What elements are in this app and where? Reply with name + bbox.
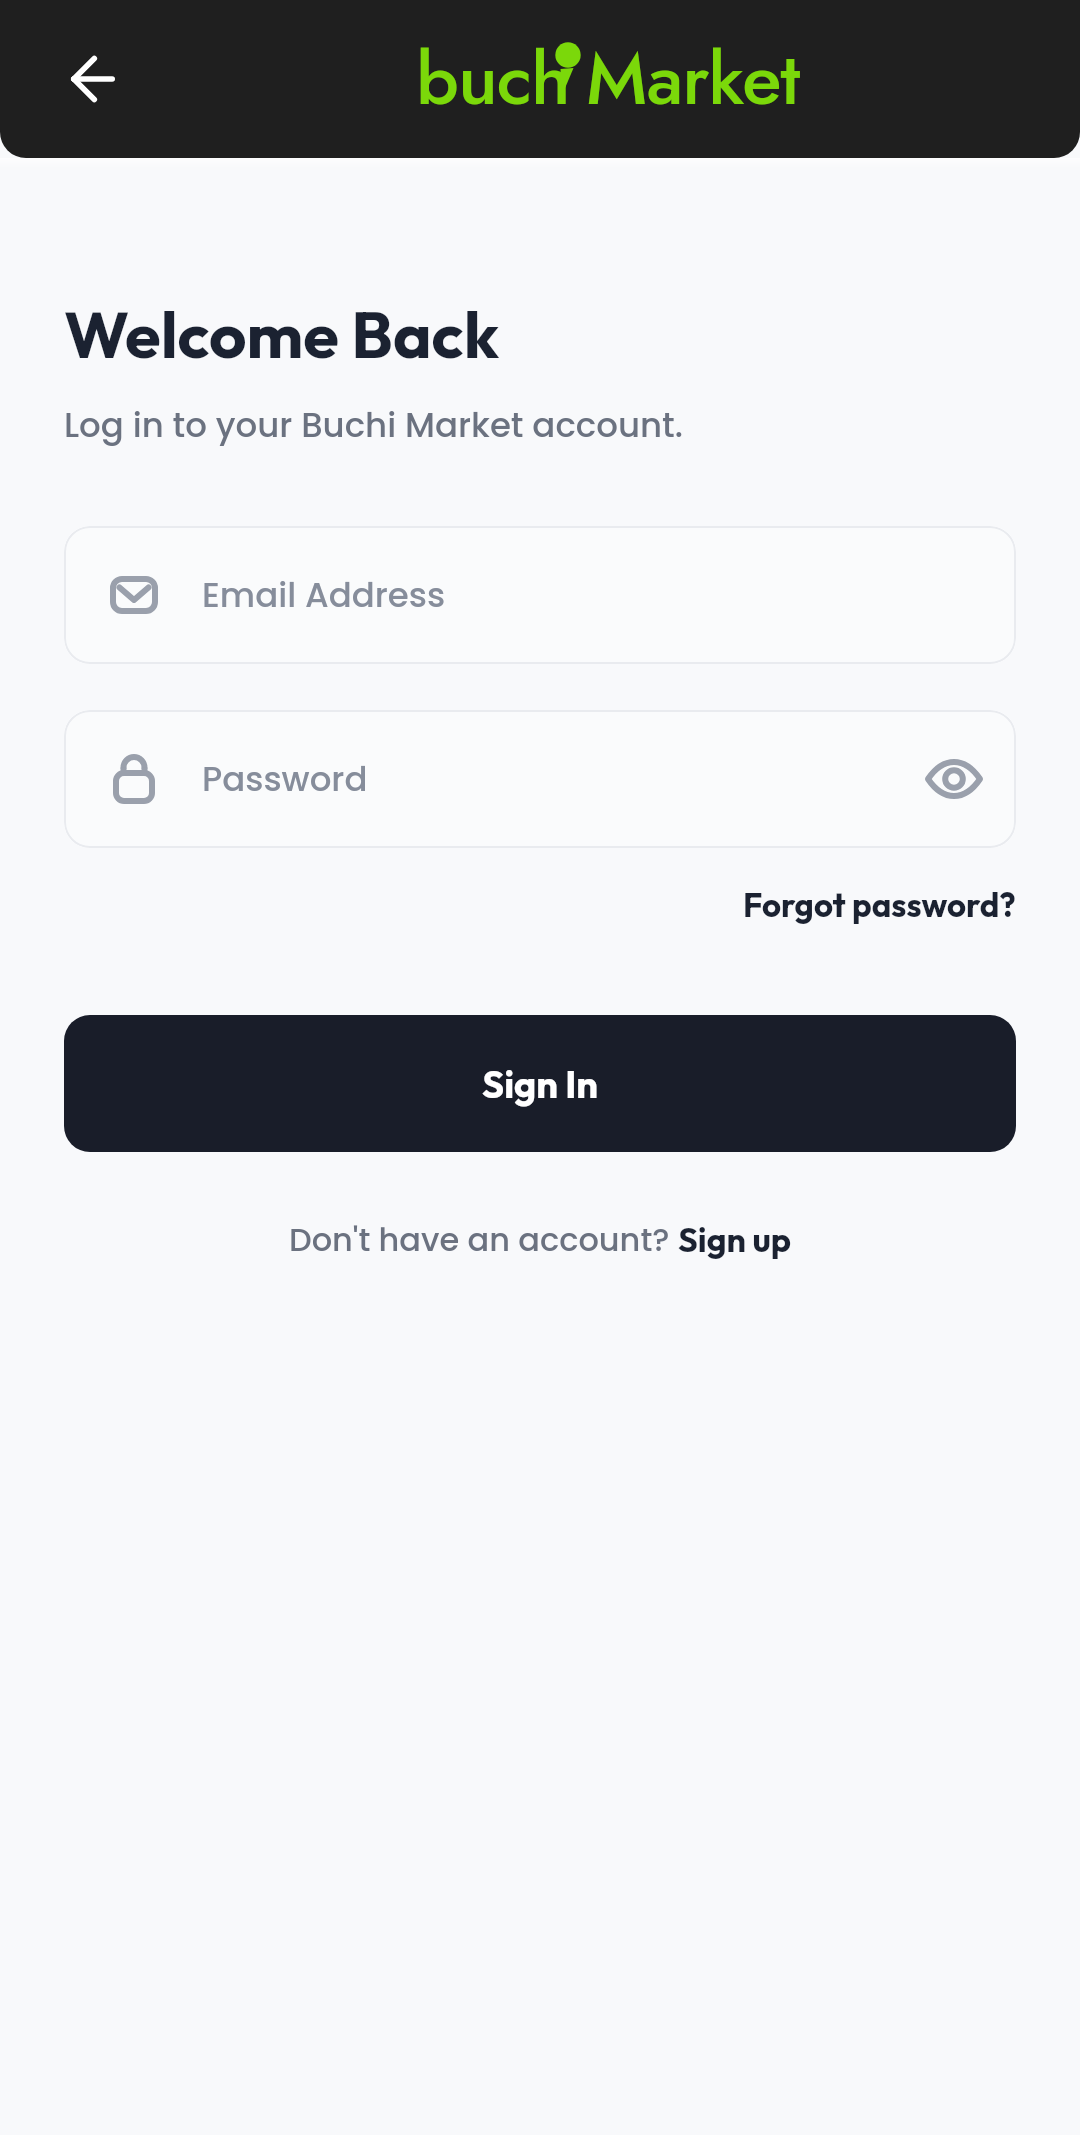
button[interactable]: Show password bbox=[912, 737, 996, 821]
button[interactable]: Don't have an account? bbox=[289, 1217, 792, 1262]
staticText: buch bbox=[416, 26, 570, 131]
button[interactable]: Email Address bbox=[64, 526, 1016, 664]
staticText: Forgot password? bbox=[743, 884, 1016, 926]
button[interactable]: Sign In bbox=[64, 1015, 1016, 1152]
staticText: Sign In bbox=[482, 1060, 599, 1108]
button[interactable]: Back bbox=[48, 34, 138, 124]
staticText: Sign up bbox=[678, 1218, 792, 1261]
staticText: Log in to your Buchi Market account. bbox=[64, 401, 683, 449]
staticText: Don't have an account? bbox=[289, 1217, 678, 1262]
staticText: Welcome Back bbox=[64, 293, 500, 375]
staticText: Password bbox=[202, 755, 368, 803]
button[interactable]: Password bbox=[64, 710, 1016, 848]
button[interactable]: Forgot password? bbox=[743, 884, 1016, 926]
staticText: Market bbox=[586, 26, 800, 131]
staticText: Email Address bbox=[202, 571, 446, 619]
